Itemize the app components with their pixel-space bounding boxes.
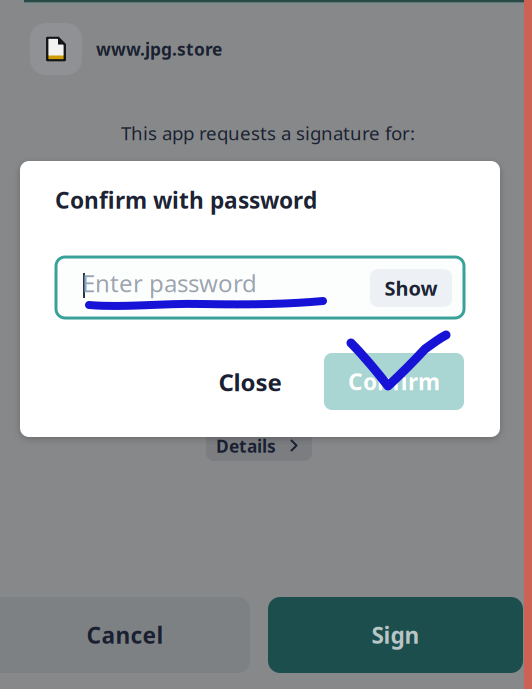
staticText: Cancel xyxy=(86,620,163,650)
staticText: Confirm xyxy=(348,366,440,396)
staticText: Enter password xyxy=(82,267,257,299)
staticText: Show xyxy=(384,275,437,301)
staticText: Close xyxy=(218,366,281,398)
staticText: www.jpg.store xyxy=(96,37,222,60)
button[interactable]: Details xyxy=(206,431,312,461)
button[interactable]: Sign xyxy=(268,597,523,673)
button[interactable]: Show xyxy=(370,269,452,307)
button[interactable]: Confirm xyxy=(324,353,464,410)
staticText: Details xyxy=(216,434,276,457)
staticText: Confirm with password xyxy=(55,185,317,215)
staticText: Sign xyxy=(371,620,419,650)
staticText: This app requests a signature for: xyxy=(121,121,415,145)
button[interactable]: Cancel xyxy=(0,597,250,673)
button[interactable]: Close xyxy=(205,357,295,407)
